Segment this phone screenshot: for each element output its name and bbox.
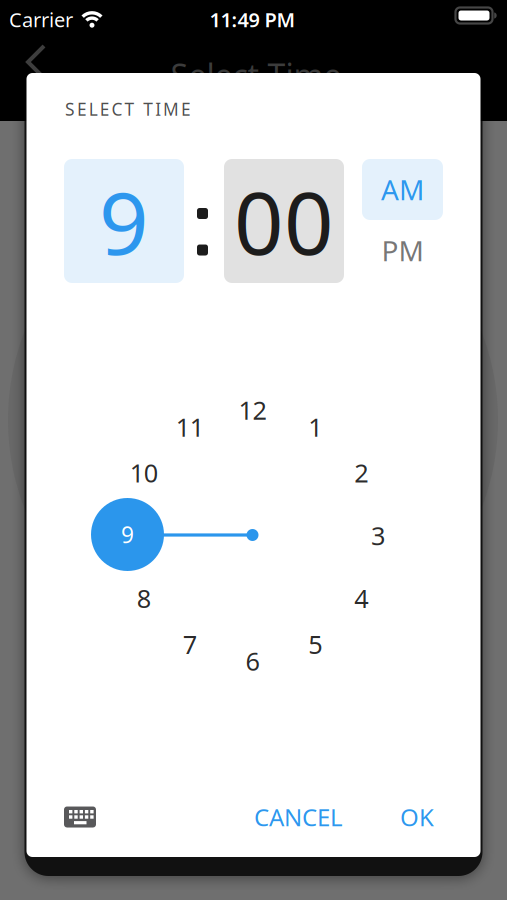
staticText: CANCEL [254,801,343,833]
staticText: C [112,97,123,120]
staticText: 7 [183,627,197,661]
button[interactable]: OK [382,797,452,837]
button[interactable]: 10 [122,451,166,495]
button[interactable]: PM [362,220,443,281]
staticText: 9 [99,163,149,279]
button[interactable]: 2 [339,451,383,495]
staticText: OK [400,801,434,833]
staticText: 1 [308,410,322,444]
button[interactable]: 6 [230,639,274,683]
staticText: 5 [308,627,322,661]
staticText: 3 [371,519,385,552]
staticText: 11:49 PM [209,6,295,33]
button[interactable]: CANCEL [238,797,358,837]
button[interactable]: 12 [230,388,274,432]
button[interactable] [58,799,102,835]
staticText: 12 [238,393,266,427]
staticText: E [77,97,87,120]
button[interactable]: 9 [91,498,164,571]
staticText: E [181,97,191,120]
staticText: M [163,97,179,120]
staticText: L [89,97,98,120]
staticText: 2 [354,456,368,489]
staticText: S [65,97,75,120]
staticText: 4 [354,581,368,615]
button[interactable]: 8 [122,576,166,620]
staticText: PM [381,232,423,269]
staticText: E [100,97,110,120]
staticText: Select Time [170,54,341,96]
staticText: 6 [245,644,259,678]
button[interactable]: AM [362,159,443,220]
button[interactable]: 1 [293,405,337,449]
staticText: 9 [121,519,134,549]
button[interactable]: 4 [339,576,383,620]
staticText: AM [381,171,424,208]
staticText: T [124,97,134,120]
button[interactable]: 3 [356,513,400,557]
button[interactable]: 7 [168,622,212,666]
staticText: 10 [130,456,158,489]
staticText: I [155,97,161,120]
button[interactable]: 9 [64,159,184,283]
staticText: 00 [234,163,334,279]
staticText: Carrier [9,6,73,33]
staticText: 8 [137,581,151,615]
button[interactable]: 5 [293,622,337,666]
button[interactable]: 11 [168,405,212,449]
staticText: 11 [176,410,204,444]
button[interactable]: 00 [224,159,344,283]
staticText: T [143,97,153,120]
